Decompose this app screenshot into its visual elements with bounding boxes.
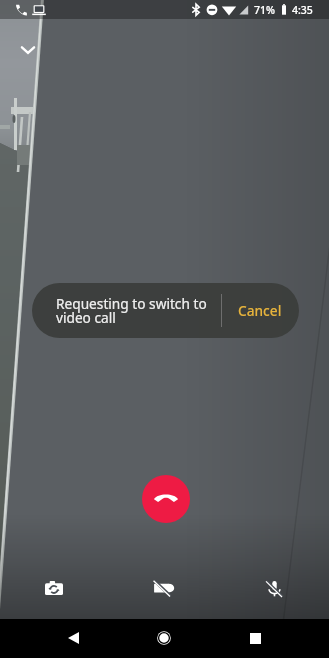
button[interactable]: Cancel (222, 283, 297, 338)
button[interactable]: Home (146, 620, 182, 656)
button[interactable]: Back (55, 620, 91, 656)
staticText: Cancel (238, 301, 282, 320)
button[interactable]: End call (142, 475, 190, 523)
button[interactable]: Turn off video (146, 570, 182, 606)
button[interactable]: Switch camera (36, 570, 72, 606)
staticText: 4:35 (292, 3, 313, 17)
staticText: 71% (254, 3, 275, 17)
button[interactable]: Collapse (14, 36, 42, 64)
staticText: Requesting to switch to video call (56, 294, 211, 327)
button[interactable]: Mute microphone (256, 570, 292, 606)
button[interactable]: Recents (237, 620, 273, 656)
